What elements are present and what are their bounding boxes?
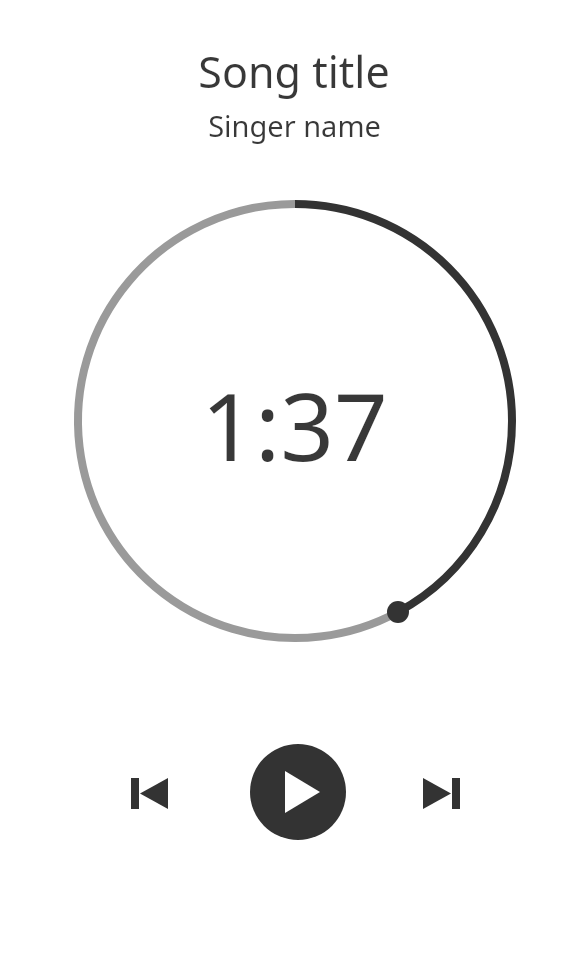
- staticText: Song title: [198, 42, 390, 100]
- button[interactable]: Next track: [403, 758, 481, 826]
- staticText: Singer name: [208, 106, 381, 145]
- button[interactable]: Play: [250, 744, 346, 840]
- button[interactable]: Previous track: [111, 758, 189, 826]
- staticText: 1:37: [201, 361, 388, 481]
